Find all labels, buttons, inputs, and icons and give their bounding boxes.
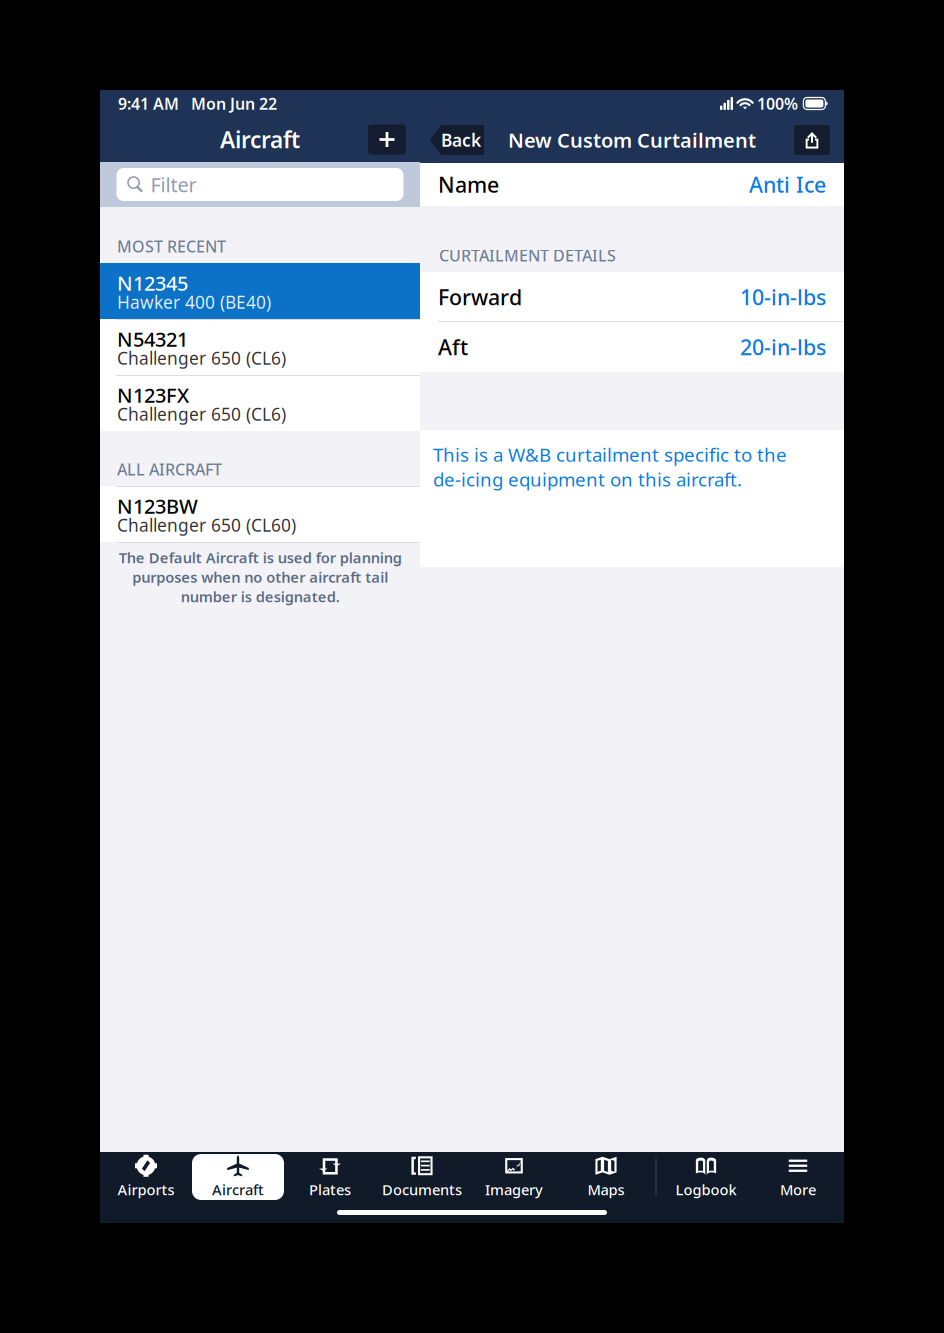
staticText: Plates [309,1180,351,1199]
staticText: Aircraft [212,1180,264,1199]
button[interactable]: Plates [284,1154,376,1200]
staticText: Maps [587,1180,624,1199]
staticText: Challenger 650 (CL6) [117,346,286,369]
button[interactable]: Aircraft [192,1154,284,1200]
button[interactable]: Name [420,163,844,206]
button[interactable]: N54321 [100,319,420,375]
staticText: 100% [757,93,798,114]
staticText: N123BW [117,493,198,519]
button[interactable]: N123FX [100,375,420,431]
button[interactable]: Back [430,125,484,155]
staticText: Back [441,128,481,151]
staticText: Hawker 400 (BE40) [117,290,271,313]
staticText: Challenger 650 (CL60) [117,513,296,536]
button[interactable]: Add aircraft [368,124,406,154]
staticText: This is a W&B curtailment specific to th… [433,442,787,492]
staticText: More [780,1180,816,1199]
button[interactable]: N123BW [100,486,420,542]
staticText: The Default Aircraft is used for plannin… [118,548,401,606]
staticText: 9:41 AM [118,93,179,114]
staticText: N123FX [117,382,189,408]
staticText: 20-in-lbs [740,333,826,361]
button[interactable]: Imagery [468,1154,560,1200]
staticText: Name [438,170,499,199]
staticText: Anti Ice [749,170,826,199]
staticText: New Custom Curtailment [508,127,756,153]
staticText: Mon Jun 22 [191,93,277,114]
staticText: Airports [117,1180,174,1199]
staticText: 10-in-lbs [740,283,826,311]
button[interactable]: Documents [376,1154,468,1200]
button[interactable]: Airports [100,1154,192,1200]
staticText: Filter [150,171,196,198]
button[interactable]: Forward [420,272,844,322]
button[interactable]: Aft [420,322,844,372]
staticText: Documents [382,1180,462,1199]
staticText: ALL AIRCRAFT [117,459,222,480]
staticText: Aircraft [220,124,300,154]
staticText: MOST RECENT [117,236,226,257]
staticText: Imagery [485,1180,543,1199]
button[interactable]: Share [794,125,830,155]
staticText: Forward [438,283,522,311]
staticText: N54321 [117,326,188,352]
button[interactable]: N12345 [100,263,420,319]
staticText: Aft [438,333,468,361]
button[interactable]: Logbook [660,1154,752,1200]
staticText: CURTAILMENT DETAILS [439,245,616,266]
button[interactable]: More [752,1154,844,1200]
staticText: Logbook [675,1180,736,1199]
staticText: N12345 [117,270,188,296]
button[interactable]: Maps [560,1154,652,1200]
staticText: Challenger 650 (CL6) [117,402,286,425]
